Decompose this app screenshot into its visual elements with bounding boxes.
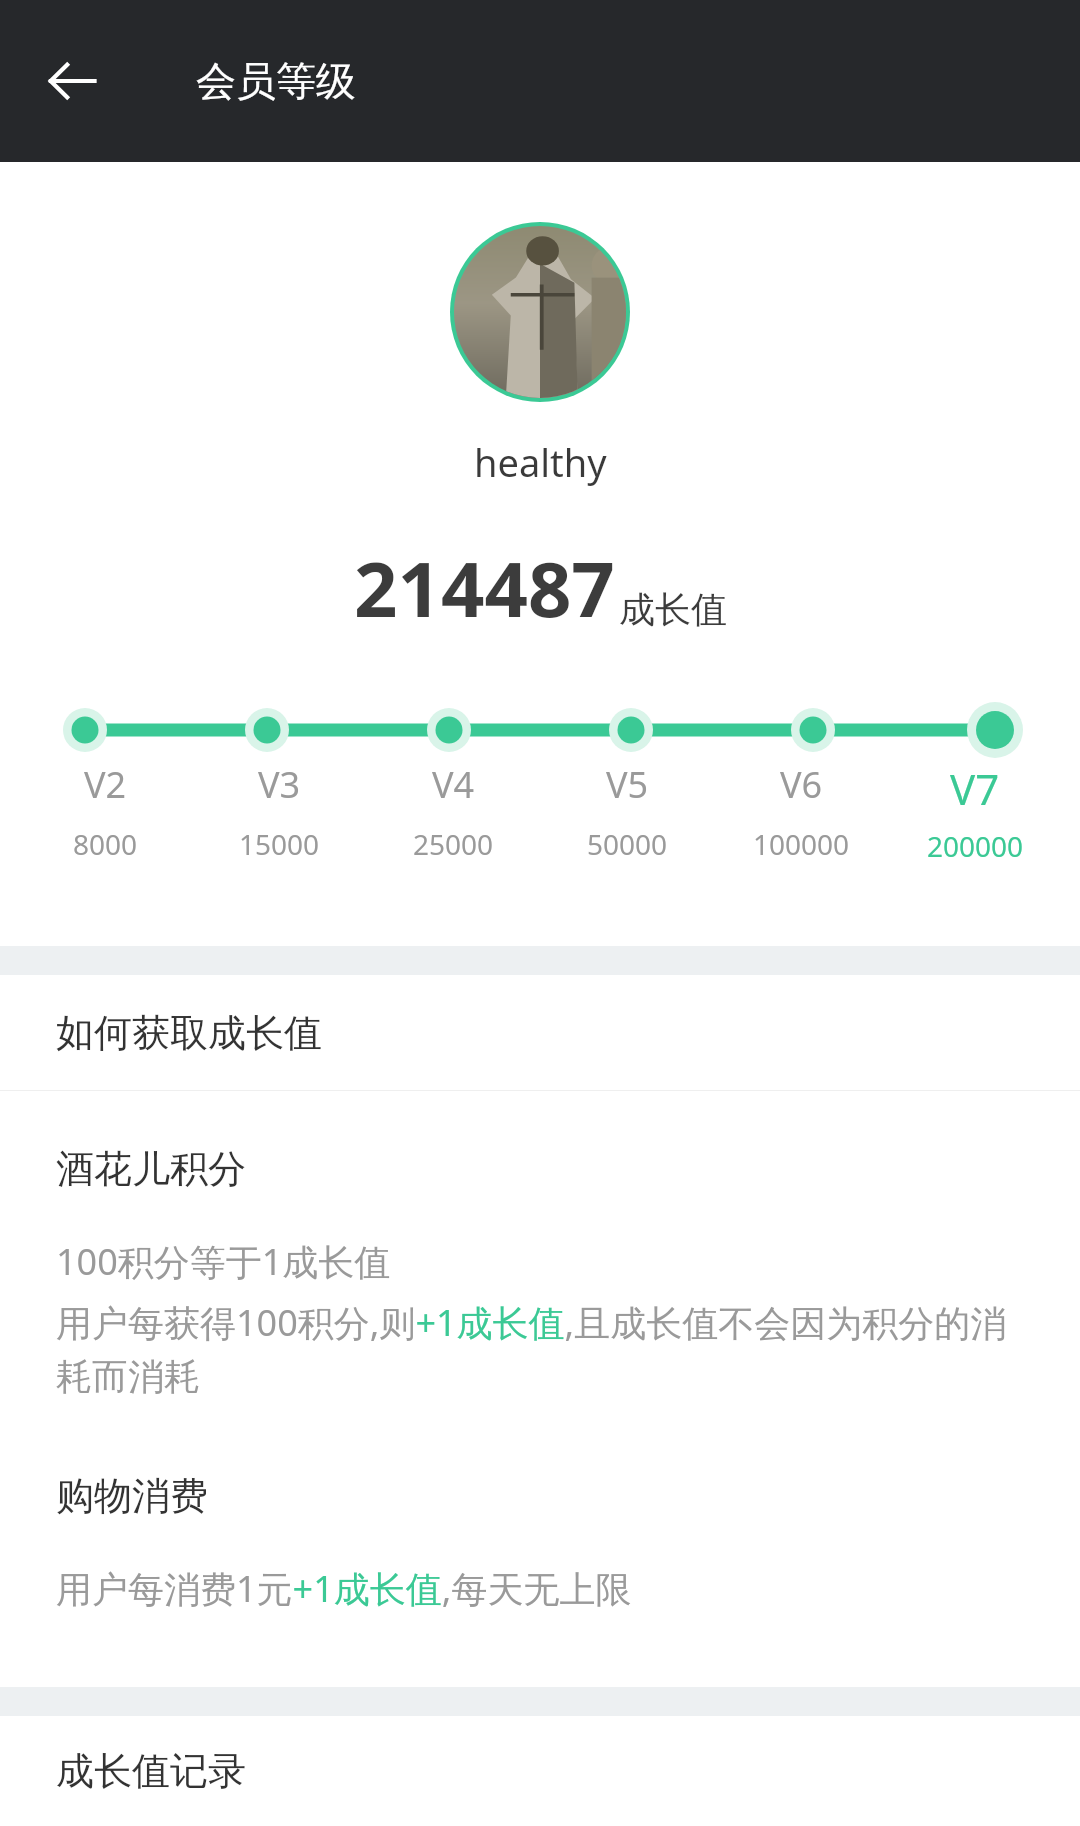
staticText: 用户每获得100积分,则+1成长值,且成长值不会因为积分的消耗而消耗 xyxy=(56,1298,1040,1400)
staticText: V6 xyxy=(780,760,823,809)
staticText: V2 xyxy=(84,760,127,809)
staticText: V7 xyxy=(950,760,1000,817)
staticText: 200000 xyxy=(927,827,1024,865)
button[interactable]: 成长值记录 xyxy=(0,1716,1080,1826)
staticText: 用户每消费1元+1成长值,每天无上限 xyxy=(56,1564,632,1613)
staticText: 成长值 xyxy=(619,587,727,632)
staticText: V5 xyxy=(606,760,649,809)
staticText: 100积分等于1成长值 xyxy=(56,1237,391,1286)
staticText: 如何获取成长值 xyxy=(56,1009,322,1057)
staticText: 214487 xyxy=(354,536,615,640)
staticText: 100000 xyxy=(753,825,850,863)
button[interactable]: Avatar xyxy=(450,222,630,402)
staticText: 成长值记录 xyxy=(56,1747,246,1795)
staticText: 会员等级 xyxy=(196,56,356,106)
staticText: 25000 xyxy=(413,825,494,863)
staticText: V3 xyxy=(258,760,301,809)
button[interactable]: Back xyxy=(30,39,114,123)
staticText: 购物消费 xyxy=(56,1472,208,1520)
staticText: 50000 xyxy=(587,825,668,863)
button[interactable]: 如何获取成长值 xyxy=(0,975,1080,1090)
staticText: 酒花儿积分 xyxy=(56,1145,246,1193)
staticText: V4 xyxy=(432,760,475,809)
staticText: 15000 xyxy=(239,825,320,863)
staticText: healthy xyxy=(474,436,607,488)
staticText: 8000 xyxy=(73,825,138,863)
